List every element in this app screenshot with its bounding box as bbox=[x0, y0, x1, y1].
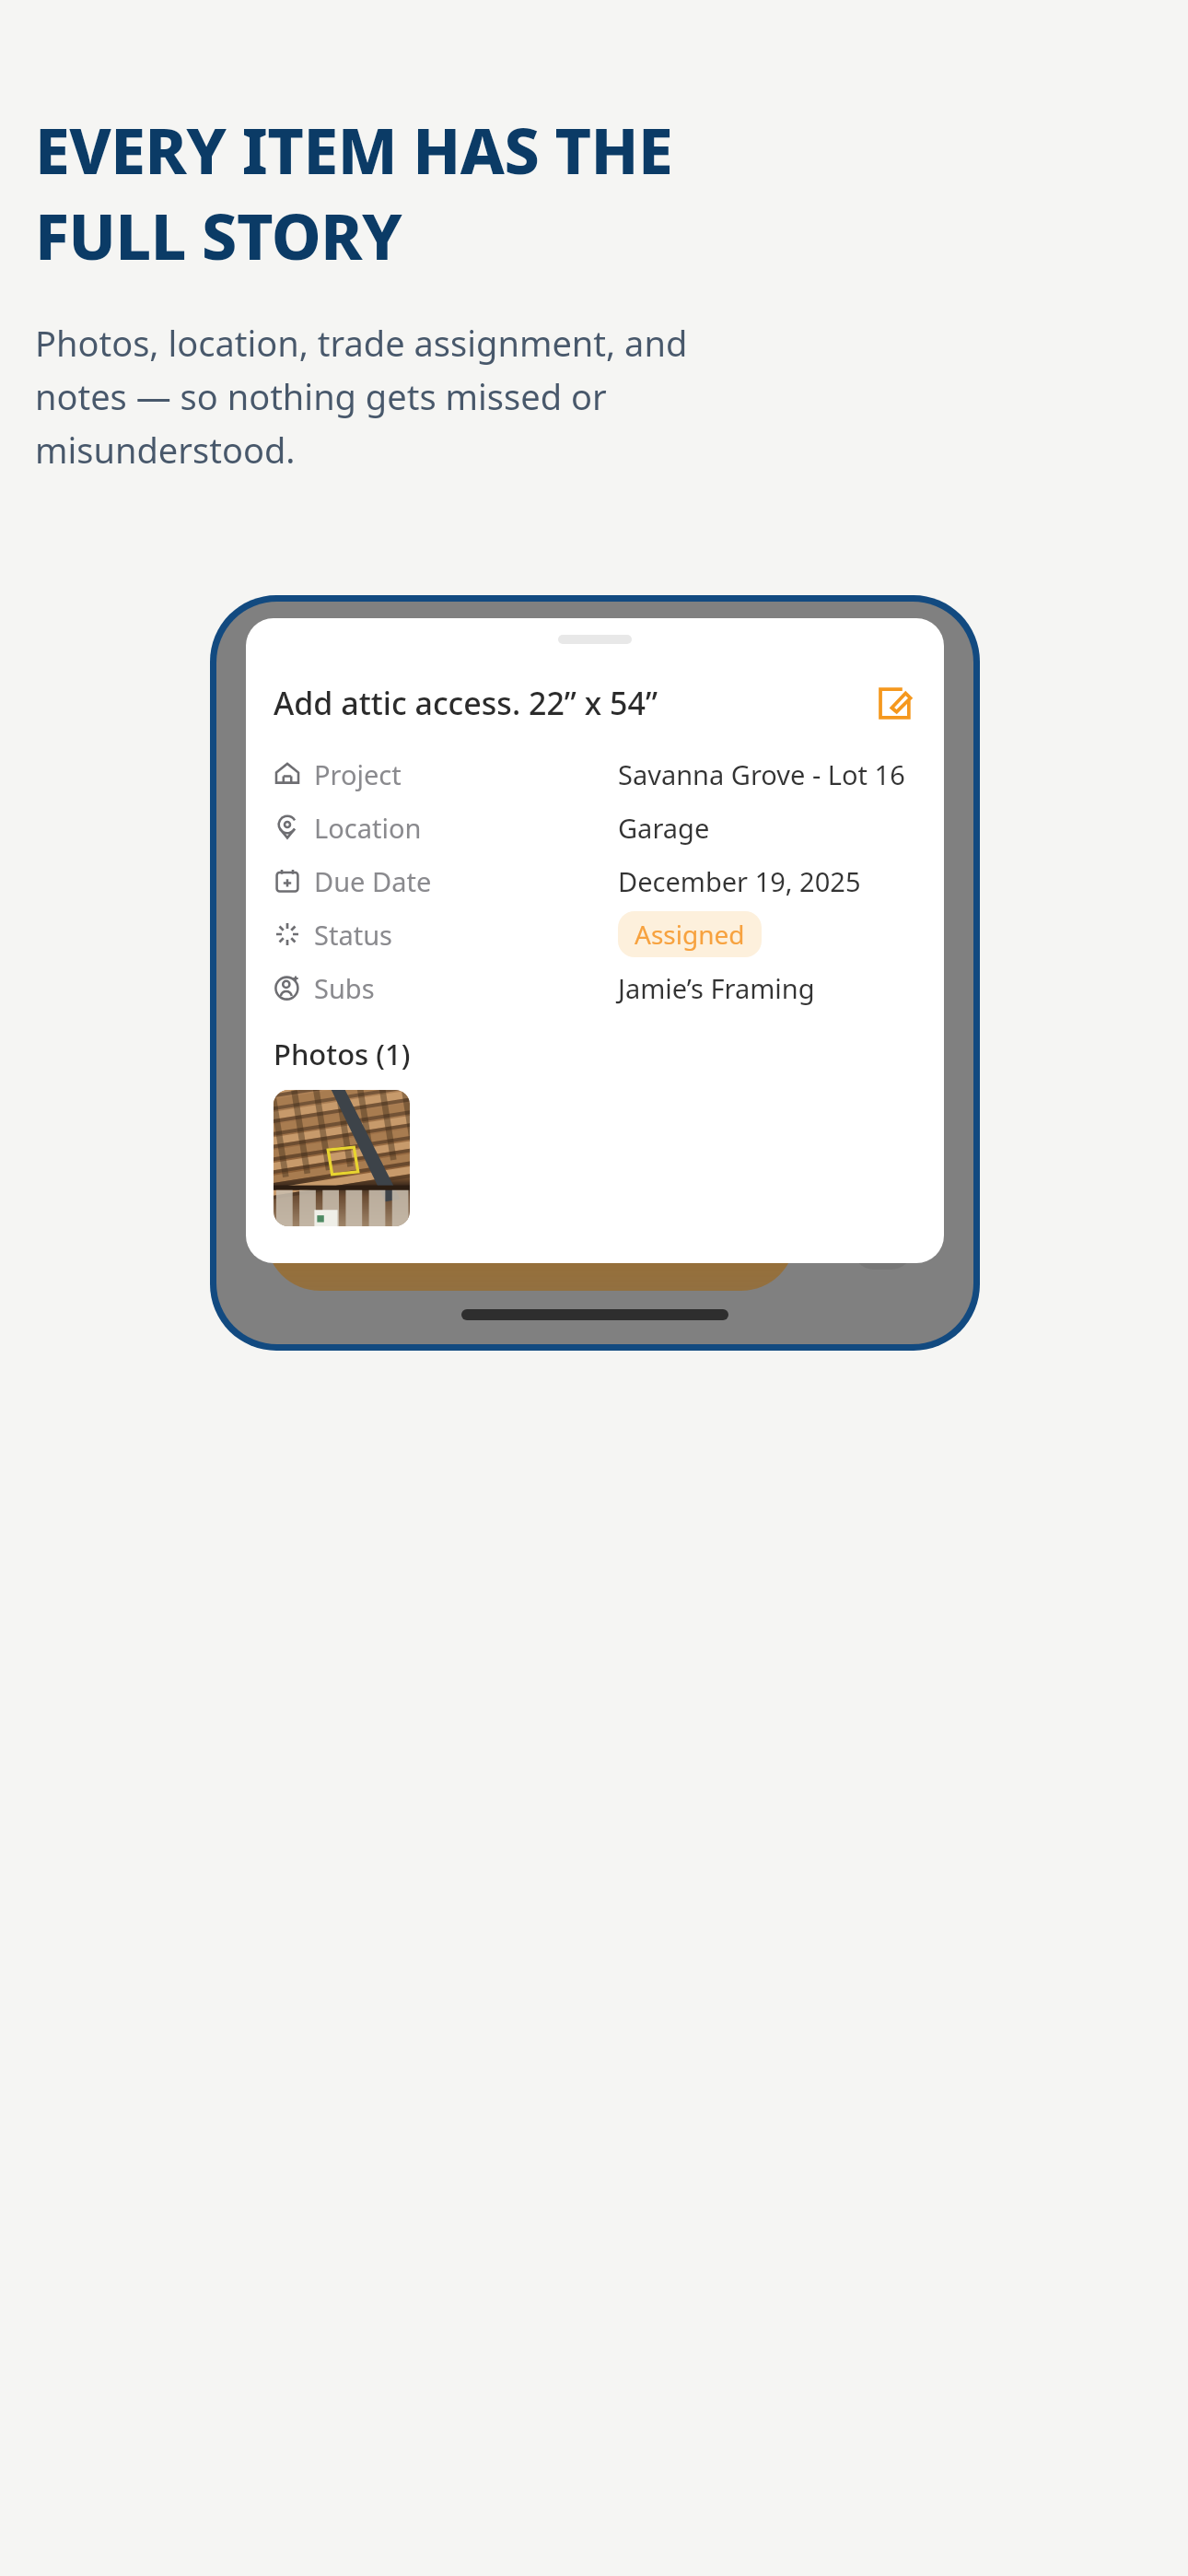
button[interactable]: Project bbox=[246, 747, 944, 801]
button[interactable]: Subs bbox=[246, 961, 944, 1014]
staticText: Add attic access. 22” x 54” bbox=[274, 682, 868, 724]
staticText: Location bbox=[314, 810, 422, 846]
staticText: Garage bbox=[618, 810, 710, 846]
staticText: Subs bbox=[314, 970, 375, 1006]
button[interactable]: Due Date bbox=[246, 854, 944, 907]
staticText: Jamie’s Framing bbox=[618, 970, 815, 1006]
staticText: December 19, 2025 bbox=[618, 863, 861, 899]
staticText: Assigned bbox=[635, 917, 745, 952]
staticText: EVERY ITEM HAS THE bbox=[35, 107, 673, 193]
staticText: Photos (1) bbox=[274, 1035, 411, 1073]
button[interactable]: Attic photo bbox=[274, 1090, 410, 1226]
button[interactable]: Location bbox=[246, 801, 944, 854]
staticText: Photos, location, trade assignment, and … bbox=[35, 319, 688, 474]
button[interactable]: Status bbox=[246, 907, 944, 961]
button[interactable]: Edit item bbox=[868, 677, 920, 729]
staticText: Due Date bbox=[314, 863, 432, 899]
staticText: Savanna Grove - Lot 16 bbox=[618, 756, 905, 792]
staticText: Status bbox=[314, 917, 392, 953]
staticText: FULL STORY bbox=[35, 193, 402, 278]
staticText: Project bbox=[314, 756, 402, 792]
